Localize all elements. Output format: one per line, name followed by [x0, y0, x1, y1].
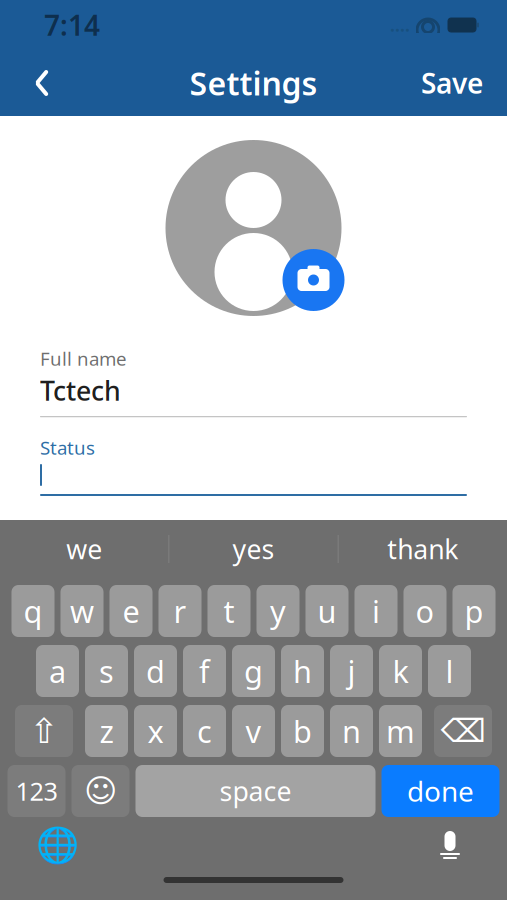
staticText: done	[407, 772, 474, 810]
staticText: s	[99, 651, 114, 691]
button[interactable]: v	[232, 705, 275, 757]
button[interactable]: Next keyboard	[32, 820, 82, 870]
button[interactable]: Save	[411, 55, 493, 111]
staticText: m	[386, 711, 415, 751]
button[interactable]: thank	[339, 521, 507, 577]
staticText: c	[197, 711, 212, 751]
button[interactable]: Change photo	[282, 249, 344, 311]
button[interactable]: h	[281, 645, 324, 697]
staticText: 🌐	[35, 825, 78, 865]
staticText: u	[317, 591, 336, 631]
button[interactable]: q	[11, 585, 54, 637]
staticText: k	[392, 651, 408, 691]
staticText: Tctech	[40, 373, 121, 408]
button[interactable]: r	[158, 585, 201, 637]
staticText: Full name	[40, 346, 127, 371]
button[interactable]: x	[134, 705, 177, 757]
button[interactable]: space	[135, 765, 375, 817]
staticText: 7:14	[44, 6, 100, 44]
staticText: n	[342, 711, 361, 751]
staticText: t	[223, 591, 234, 631]
staticText: 123	[15, 774, 57, 808]
staticText: Save	[421, 64, 483, 102]
staticText: p	[464, 591, 483, 631]
staticText: r	[173, 591, 186, 631]
staticText: f	[199, 651, 210, 691]
button[interactable]: we	[0, 521, 168, 577]
staticText: h	[293, 651, 312, 691]
staticText: z	[99, 711, 113, 751]
staticText: g	[244, 651, 263, 691]
button[interactable]: w	[60, 585, 103, 637]
button[interactable]: g	[232, 645, 275, 697]
button[interactable]: j	[330, 645, 373, 697]
staticText: a	[49, 651, 66, 691]
staticText: i	[372, 591, 380, 631]
staticText: Status	[40, 435, 95, 460]
staticText: ....	[390, 13, 410, 36]
button[interactable]: Dictate	[425, 820, 475, 870]
staticText: space	[219, 773, 291, 809]
button[interactable]: 123	[7, 765, 65, 817]
button[interactable]: done	[381, 765, 499, 817]
button[interactable]: y	[256, 585, 299, 637]
button[interactable]: u	[305, 585, 348, 637]
staticText: y	[270, 591, 286, 631]
staticText: o	[415, 591, 434, 631]
button[interactable]: s	[85, 645, 128, 697]
button[interactable]: a	[36, 645, 79, 697]
button[interactable]: Shift	[15, 705, 73, 757]
button[interactable]: p	[452, 585, 495, 637]
staticText: q	[23, 591, 42, 631]
button[interactable]: f	[183, 645, 226, 697]
staticText: ☺	[84, 773, 117, 809]
button[interactable]: Delete	[434, 705, 492, 757]
staticText: w	[70, 591, 94, 631]
staticText: l	[445, 651, 453, 691]
button[interactable]: b	[281, 705, 324, 757]
staticText: d	[146, 651, 165, 691]
staticText: we	[66, 531, 102, 567]
button[interactable]: yes	[169, 521, 338, 577]
staticText: Settings	[189, 62, 317, 104]
staticText: b	[293, 711, 312, 751]
button[interactable]: n	[330, 705, 373, 757]
button[interactable]: o	[403, 585, 446, 637]
staticText: ⌫	[440, 713, 485, 749]
button[interactable]: d	[134, 645, 177, 697]
staticText: e	[122, 591, 139, 631]
staticText: v	[245, 711, 261, 751]
button[interactable]: Back	[14, 55, 70, 111]
staticText: x	[147, 711, 163, 751]
button[interactable]: t	[207, 585, 250, 637]
staticText: ⇧	[29, 711, 58, 751]
button[interactable]: l	[428, 645, 471, 697]
staticText: thank	[387, 531, 458, 567]
staticText: j	[347, 651, 355, 691]
button[interactable]: z	[85, 705, 128, 757]
button[interactable]: k	[379, 645, 422, 697]
staticText: yes	[232, 531, 274, 567]
button[interactable]: c	[183, 705, 226, 757]
button[interactable]: m	[379, 705, 422, 757]
button[interactable]: Emoji	[71, 765, 129, 817]
button[interactable]: e	[109, 585, 152, 637]
button[interactable]: i	[354, 585, 397, 637]
